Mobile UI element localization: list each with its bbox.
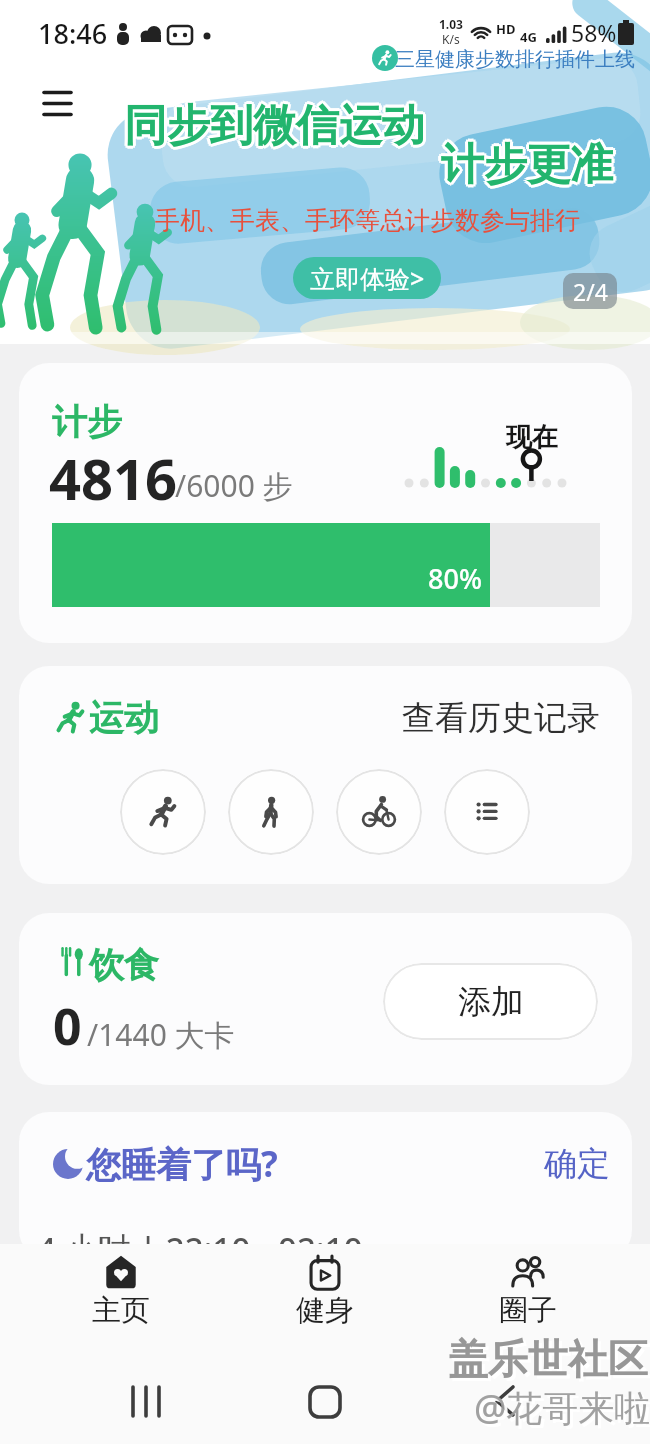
staticText: 同步到微信运动 (124, 99, 425, 153)
button[interactable]: 确定 (520, 1142, 610, 1186)
staticText: 同步到微信运动 (122, 97, 423, 151)
button[interactable] (465, 1360, 545, 1440)
staticText: HD (496, 20, 516, 38)
staticText: /1440 大卡 (87, 1014, 235, 1055)
staticText: 同步到微信运动 (122, 101, 423, 155)
staticText: 计步更准 (443, 136, 615, 190)
staticText: 盖乐世社区 (448, 1334, 648, 1384)
staticText: 健身 (296, 1292, 354, 1329)
staticText: 计步更准 (439, 136, 611, 190)
button[interactable]: 添加 (383, 963, 598, 1040)
staticText: 饮食 (89, 943, 159, 987)
staticText: K/s (442, 31, 460, 47)
button[interactable] (368, 42, 632, 74)
staticText: 计步更准 (439, 140, 611, 194)
staticText: 三星健康步数排行插件上线 (395, 47, 635, 72)
staticText: 同步到微信运动 (124, 102, 425, 156)
staticText: 手机、手表、手环等总计步数参与排行 (155, 205, 580, 236)
button[interactable] (255, 1246, 395, 1338)
staticText: 计步更准 (443, 140, 615, 194)
staticText: 主页 (92, 1292, 150, 1329)
staticText: 2/4 (573, 276, 608, 307)
button[interactable] (458, 1246, 598, 1338)
staticText: 计步更准 (441, 138, 613, 192)
staticText: 1.03 (439, 16, 463, 32)
staticText: 同步到微信运动 (126, 101, 427, 155)
button[interactable]: 立即体验> (293, 257, 441, 299)
staticText: 添加 (458, 981, 524, 1023)
staticText: @花哥来啦 (474, 1383, 650, 1432)
button[interactable] (285, 1360, 365, 1440)
staticText: 同步到微信运动 (127, 99, 428, 153)
staticText: 同步到微信运动 (121, 99, 422, 153)
staticText: 运动 (89, 696, 159, 740)
button[interactable] (228, 769, 314, 855)
staticText: 计步更准 (438, 138, 610, 192)
staticText: 0 (53, 992, 82, 1060)
staticText: 4G (520, 28, 537, 46)
button[interactable] (444, 769, 530, 855)
staticText: 58% (571, 17, 617, 48)
staticText: 计步更准 (441, 141, 613, 195)
staticText: 查看历史记录 (402, 697, 600, 739)
staticText: 80% (428, 560, 482, 597)
staticText: 计步更准 (444, 138, 616, 192)
staticText: @花哥来啦 (477, 1386, 650, 1435)
button[interactable]: 查看历史记录 (380, 695, 600, 741)
button[interactable] (36, 82, 80, 124)
button[interactable] (336, 769, 422, 855)
staticText: 4 小时 | 22:10 - 02:10 (37, 1226, 363, 1271)
button[interactable] (105, 1360, 185, 1440)
button[interactable] (120, 769, 206, 855)
staticText: 4816 (49, 440, 178, 516)
staticText: 计步更准 (441, 135, 613, 189)
staticText: 现在 (506, 421, 558, 454)
staticText: 同步到微信运动 (124, 96, 425, 150)
staticText: 盖乐世社区 (451, 1337, 650, 1387)
button[interactable] (51, 1246, 191, 1338)
staticText: 圈子 (499, 1292, 557, 1329)
staticText: 计步 (52, 400, 122, 444)
staticText: /6000 步 (175, 465, 293, 506)
staticText: 确定 (544, 1143, 610, 1185)
staticText: 18:46 (38, 15, 108, 52)
staticText: 您睡着了吗? (86, 1140, 278, 1188)
staticText: 同步到微信运动 (126, 97, 427, 151)
staticText: 立即体验> (310, 261, 425, 295)
